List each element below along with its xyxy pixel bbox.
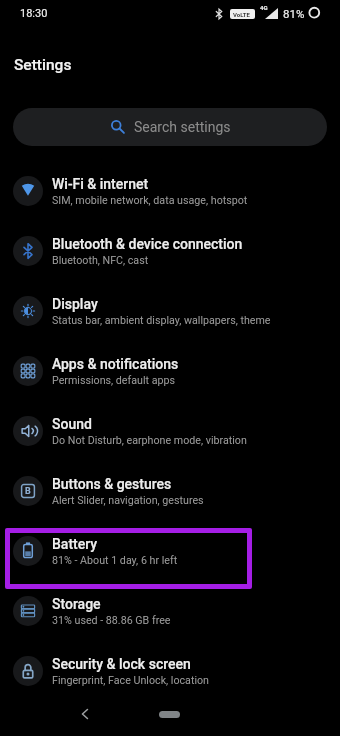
button[interactable]: Security & lock screen (0, 641, 340, 701)
button[interactable] (150, 698, 188, 730)
staticText: SIM, mobile network, data usage, hotspot (52, 194, 248, 207)
staticText: Storage (52, 596, 101, 612)
staticText: Sound (52, 416, 92, 432)
staticText: Settings (14, 56, 72, 74)
staticText: 4G (260, 4, 268, 11)
button[interactable]: Apps & notifications (0, 341, 340, 401)
staticText: Wi-Fi & internet (52, 176, 149, 192)
button[interactable]: Battery (0, 521, 340, 581)
staticText: 81% (283, 7, 305, 20)
staticText: Display (52, 296, 98, 312)
staticText: 31% used - 88.86 GB free (52, 614, 171, 627)
button[interactable] (69, 698, 102, 730)
button[interactable]: B (0, 461, 340, 521)
staticText: Bluetooth & device connection (52, 236, 243, 252)
staticText: Fingerprint, Face Unlock, location (52, 674, 210, 687)
staticText: B (25, 486, 31, 497)
staticText: Bluetooth, NFC, cast (52, 254, 149, 267)
button[interactable]: Bluetooth & device connection (0, 221, 340, 281)
staticText: Battery (52, 536, 98, 552)
staticText: Buttons & gestures (52, 476, 172, 492)
staticText: Security & lock screen (52, 656, 191, 672)
button[interactable]: Display (0, 281, 340, 341)
staticText: Permissions, default apps (52, 374, 176, 387)
staticText: Apps & notifications (52, 356, 179, 372)
button[interactable]: Search settings (13, 108, 327, 146)
staticText: Do Not Disturb, earphone mode, vibration (52, 434, 247, 447)
staticText: 18:30 (20, 7, 48, 20)
button[interactable]: Storage (0, 581, 340, 641)
staticText: Status bar, ambient display, wallpapers,… (52, 314, 271, 327)
staticText: 81% - About 1 day, 6 hr left (52, 554, 178, 567)
button[interactable]: Wi-Fi & internet (0, 161, 340, 221)
staticText: Alert Slider, navigation, gestures (52, 494, 204, 507)
staticText: Search settings (134, 119, 231, 135)
button[interactable]: Sound (0, 401, 340, 461)
staticText: VoLTE (233, 11, 250, 18)
